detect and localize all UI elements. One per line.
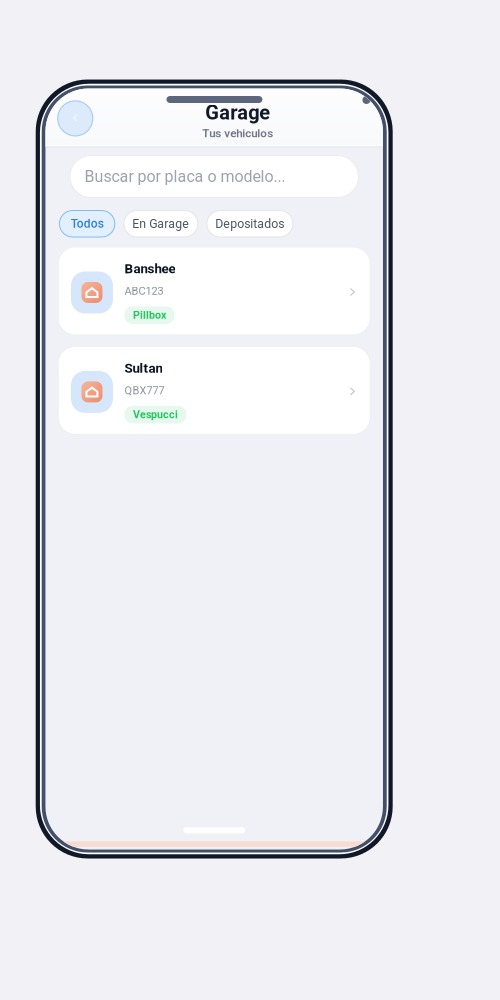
staticText: En Garage — [132, 217, 189, 231]
staticText: Depositados — [215, 217, 284, 231]
staticText: Vespucci — [133, 408, 178, 421]
staticText: Banshee — [124, 261, 175, 277]
button[interactable]: Sultan — [58, 346, 370, 434]
button[interactable]: Banshee — [58, 247, 370, 335]
button[interactable]: En Garage — [124, 210, 198, 237]
staticText: Tus vehiculos — [202, 126, 273, 140]
staticText: Buscar por placa o modelo... — [84, 167, 285, 186]
staticText: ABC123 — [124, 285, 163, 297]
staticText: Garage — [205, 101, 270, 124]
staticText: Todos — [71, 217, 104, 231]
button[interactable]: Todos — [59, 210, 115, 237]
button[interactable]: Back — [58, 101, 93, 136]
staticText: Sultan — [124, 360, 162, 376]
button[interactable]: Depositados — [207, 210, 293, 237]
staticText: Pillbox — [133, 309, 166, 321]
staticText: QBX777 — [124, 384, 164, 397]
